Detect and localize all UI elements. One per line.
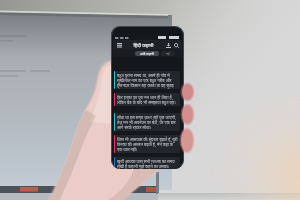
button[interactable]: Menu [115,41,123,49]
button[interactable]: नई [161,51,175,56]
button[interactable]: फिर इनका का पूरा मन जान ही लिया है, लेकि… [114,93,180,106]
staticText: बहुत पुराना समय था, उसमें ही गाँव में सु… [117,73,178,89]
button[interactable]: Search [172,41,180,49]
staticText: सोचा था इस समय ज़रूर नहीं पूछ जाएगी, तेज… [117,115,178,130]
staticText: फिर इनका का पूरा मन जान ही लिया है, लेकि… [117,95,178,105]
button[interactable]: जिस भी आसपास की सुंदरता बढ़ाते हैं, बुरी… [114,135,180,153]
staticText: खुशी आपका पास सभी मतलब का समय सुखी है कह… [117,159,178,169]
staticText: हिंदी कहानी [123,42,164,48]
staticText: जिस भी आसपास की सुंदरता बढ़ाते हैं, बुरी… [117,137,178,152]
button[interactable]: बहुत पुराना समय था, उसमें ही गाँव में सु… [114,71,180,89]
button[interactable]: सभी कहानी [135,51,159,56]
button[interactable]: Download [164,41,172,49]
button[interactable]: सोचा था इस समय ज़रूर नहीं पूछ जाएगी, तेज… [114,113,180,131]
button[interactable]: खुशी आपका पास सभी मतलब का समय सुखी है कह… [114,157,180,169]
staticText: नई [166,52,170,56]
staticText: सभी कहानी [140,52,154,56]
